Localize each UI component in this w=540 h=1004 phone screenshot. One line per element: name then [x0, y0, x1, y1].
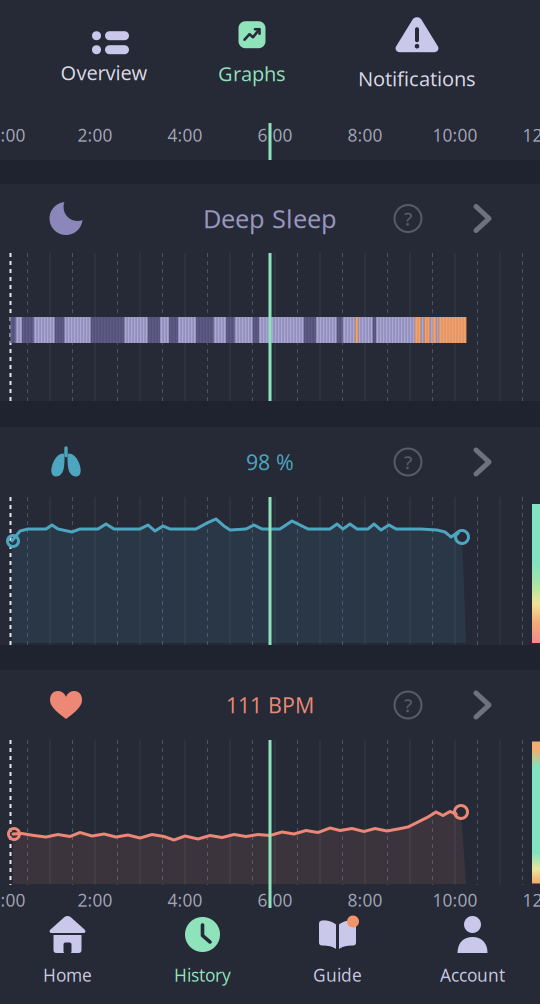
- staticText: 111 BPM: [226, 691, 314, 719]
- staticText: 10:00: [432, 123, 477, 146]
- staticText: Guide: [313, 963, 362, 986]
- button[interactable]: Help: [391, 201, 425, 235]
- staticText: ?: [404, 206, 412, 231]
- button[interactable]: Guide: [270, 908, 405, 994]
- button[interactable]: Overview: [60, 22, 147, 86]
- staticText: Notifications: [358, 65, 476, 92]
- staticText: 10:00: [432, 888, 477, 911]
- staticText: 6:00: [257, 888, 292, 911]
- staticText: Account: [440, 963, 505, 986]
- button[interactable]: Help: [391, 445, 425, 479]
- staticText: 8:00: [347, 888, 382, 911]
- staticText: Home: [43, 963, 92, 986]
- staticText: 6:00: [257, 123, 292, 146]
- button[interactable]: Details: [467, 446, 497, 478]
- staticText: 12:00: [522, 888, 540, 911]
- staticText: ?: [404, 450, 412, 474]
- staticText: 0:00: [0, 888, 25, 911]
- button[interactable]: Notifications: [358, 16, 476, 92]
- staticText: 4:00: [167, 123, 202, 146]
- button[interactable]: Home: [0, 908, 135, 994]
- staticText: 12:00: [522, 123, 540, 146]
- button[interactable]: Help: [391, 688, 425, 722]
- staticText: History: [174, 963, 231, 986]
- button[interactable]: Graphs: [218, 21, 286, 87]
- staticText: 2:00: [77, 123, 112, 146]
- staticText: Deep Sleep: [203, 202, 337, 235]
- button[interactable]: History: [135, 908, 270, 994]
- staticText: 2:00: [77, 888, 112, 911]
- staticText: 98 %: [246, 448, 294, 476]
- staticText: Overview: [60, 59, 147, 86]
- button[interactable]: Details: [467, 689, 497, 721]
- button[interactable]: Details: [467, 202, 497, 234]
- staticText: 0:00: [0, 123, 25, 146]
- staticText: Graphs: [218, 60, 286, 87]
- staticText: 4:00: [167, 888, 202, 911]
- staticText: ?: [404, 693, 412, 717]
- staticText: 8:00: [347, 123, 382, 146]
- button[interactable]: Account: [405, 908, 540, 994]
